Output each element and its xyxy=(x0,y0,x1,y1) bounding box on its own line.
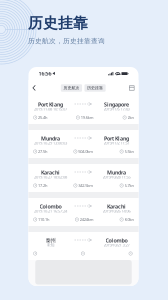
staticText: 2019/11/2 11:51 xyxy=(103,140,129,146)
staticText: 25.4h xyxy=(38,115,47,120)
staticText: 未知 xyxy=(46,242,54,247)
staticText: Mundra xyxy=(107,169,126,176)
button[interactable]: Karachi xyxy=(28,164,138,192)
staticText: Colombo xyxy=(105,237,127,244)
staticText: 历史航次 xyxy=(63,85,79,90)
staticText: 历史挂靠 xyxy=(28,14,88,32)
button[interactable]: 日历 xyxy=(125,82,138,94)
button[interactable]: Port Klang xyxy=(28,96,138,124)
staticText: 27.5h xyxy=(38,149,47,154)
button[interactable]: 返回 xyxy=(28,82,41,94)
staticText: 2kn xyxy=(127,115,133,120)
staticText: 2019/10/28 11:55 xyxy=(102,174,130,180)
button[interactable]: Colombo xyxy=(28,198,138,226)
staticText: 504.0km xyxy=(78,149,93,154)
staticText: 2019-10-21 16:57:24 xyxy=(34,208,67,214)
staticText: 17.2h xyxy=(38,183,47,188)
staticText: 19.6km xyxy=(81,115,94,120)
staticText: 2019-10-29 13:00:03 xyxy=(34,140,67,146)
staticText: 2019/10/21 3:27 xyxy=(103,242,129,248)
staticText: 8.0kn xyxy=(124,217,133,222)
staticText: Port Klang xyxy=(104,135,129,142)
staticText: Karachi xyxy=(41,169,60,176)
button[interactable]: 历史挂靠 xyxy=(84,84,106,92)
staticText: 110.1h xyxy=(38,217,49,222)
staticText: 历史挂靠 xyxy=(87,85,103,90)
staticText: Colombo xyxy=(39,203,61,210)
staticText: 342.5km xyxy=(78,183,93,188)
staticText: 2019/11/5 17:43 xyxy=(103,106,129,112)
staticText: 历史航次，历史挂靠查询 xyxy=(28,37,105,45)
staticText: 16:56 xyxy=(38,70,51,77)
staticText: 2019-10-27 18:02:08 xyxy=(34,174,67,180)
button[interactable]: 泰州 xyxy=(28,232,138,260)
staticText: Singapore xyxy=(104,101,129,108)
button[interactable]: Mundra xyxy=(28,130,138,158)
staticText: 5.5kn xyxy=(124,149,133,154)
staticText: Karachi xyxy=(107,203,126,210)
button[interactable]: 历史航次 xyxy=(61,84,82,92)
staticText: Port Klang xyxy=(38,101,63,108)
staticText: Mundra xyxy=(41,135,60,142)
staticText: 6.7kn xyxy=(124,183,133,188)
staticText: 2019/10/26 14:06 xyxy=(102,208,130,214)
staticText: 2424km xyxy=(80,217,94,222)
staticText: 2019-11-08 10:15:07 xyxy=(34,106,67,112)
staticText: 泰州 xyxy=(45,237,55,244)
